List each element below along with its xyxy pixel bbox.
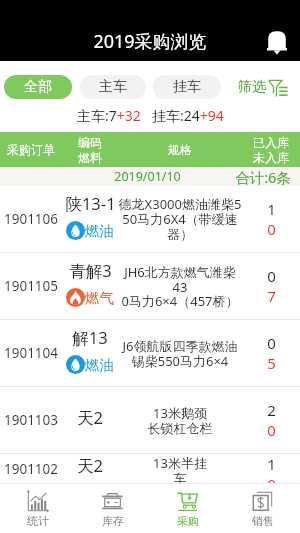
staticText: 燃气	[85, 289, 114, 307]
staticText: 挂车	[173, 78, 201, 96]
staticText: 13米半挂 车	[118, 454, 242, 483]
staticText: 0	[267, 219, 276, 239]
button[interactable]: 1901103	[0, 387, 300, 454]
staticText: 1901106	[0, 210, 62, 228]
staticText: 销售	[252, 514, 274, 528]
staticText: 规格	[118, 142, 242, 157]
staticText: 2019采购浏览	[93, 29, 207, 54]
staticText: 燃油	[85, 222, 114, 240]
button[interactable]: 1901106	[0, 186, 300, 253]
staticText: 0	[267, 420, 276, 440]
staticText: 陕13-1	[65, 192, 116, 215]
button[interactable]: 1901105	[0, 253, 300, 320]
staticText: 编码 燃料	[62, 135, 118, 165]
staticText: J6领航版四季款燃油 锡柴550马力6×4	[118, 337, 242, 370]
staticText: 5	[267, 353, 276, 373]
staticText: 1	[267, 199, 276, 219]
staticText: 0	[267, 333, 276, 353]
staticText: 0	[267, 474, 276, 483]
button[interactable]: 库存	[75, 484, 150, 533]
staticText: 主车	[99, 78, 127, 96]
staticText: 1901104	[0, 344, 62, 362]
staticText: JH6北方款燃气潍柴 43 0马力6×4（457桥）	[118, 263, 242, 310]
staticText: 主车:7+32	[77, 106, 141, 125]
staticText: 库存	[102, 514, 124, 528]
staticText: 2019/01/10	[114, 168, 181, 185]
staticText: 0	[267, 266, 276, 286]
staticText: 1901103	[0, 411, 62, 429]
button[interactable]: 销售	[225, 484, 300, 533]
button[interactable]: 筛选	[238, 75, 288, 99]
staticText: 统计	[27, 514, 49, 528]
staticText: 1901102	[0, 460, 62, 478]
staticText: 燃油	[85, 356, 114, 374]
staticText: 青解3	[69, 259, 112, 282]
staticText: 1	[267, 454, 276, 474]
staticText: 13米鹅颈 长锁杠仓栏	[118, 404, 242, 437]
button[interactable]: 1901104	[0, 320, 300, 387]
button[interactable]: 挂车	[153, 75, 221, 99]
button[interactable]: 主车	[80, 75, 146, 99]
staticText: 采购订单	[0, 142, 62, 157]
staticText: 合计:6条	[235, 167, 291, 186]
staticText: 2	[267, 400, 276, 420]
button[interactable]: Notifications	[263, 28, 291, 56]
staticText: 德龙X3000燃油潍柴5 50马力6X4（带缓速 器）	[118, 195, 242, 243]
staticText: 挂车:24+94	[152, 106, 224, 125]
staticText: 7	[267, 286, 276, 306]
staticText: 1901105	[0, 277, 62, 295]
button[interactable]: 全部	[4, 75, 72, 99]
button[interactable]: 1901102	[0, 454, 300, 483]
button[interactable]: 统计	[0, 484, 75, 533]
staticText: 全部	[24, 78, 52, 96]
staticText: 天2	[77, 406, 103, 429]
staticText: 已入库 未入库	[242, 135, 300, 165]
button[interactable]: 采购	[150, 484, 225, 533]
staticText: 采购	[177, 514, 199, 528]
staticText: 筛选	[238, 78, 266, 96]
staticText: 天2	[77, 454, 103, 477]
staticText: 解13	[72, 326, 108, 349]
